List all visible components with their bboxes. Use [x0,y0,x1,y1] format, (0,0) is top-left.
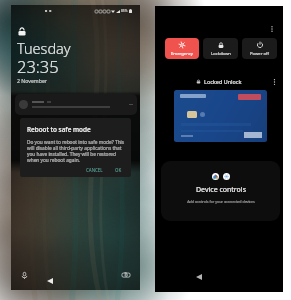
staticText: Locked Unlock [204,78,242,85]
button[interactable]: Device controls [161,161,280,221]
button[interactable]: Back [193,271,205,283]
button[interactable] [15,94,137,115]
staticText: 85% [121,9,128,13]
staticText: CANCEL [86,167,103,173]
button[interactable]: OK [113,166,124,174]
staticText: Reboot to safe mode [27,125,91,134]
button[interactable]: Voice assist [17,268,31,282]
staticText: Add controls for your connected devices [187,199,255,204]
staticText: 2 November [17,77,47,84]
button[interactable]: Emergency [165,38,199,59]
button[interactable]: Lockdown [203,38,238,59]
button[interactable] [174,90,267,142]
staticText: Device controls [196,185,247,195]
button[interactable]: Camera [119,268,133,282]
button[interactable]: CANCEL [84,166,105,174]
button[interactable]: Back [44,275,56,287]
staticText: Power off [250,51,269,57]
staticText: OK [115,167,122,173]
button[interactable]: Power off [242,38,277,59]
button[interactable]: Card options [269,77,279,86]
staticText: Tuesday [17,38,71,58]
staticText: Do you want to reboot into safe mode? Th… [27,139,126,163]
staticText: Emergency [171,51,193,57]
staticText: 23:35 [17,55,59,77]
button[interactable]: More options [267,24,277,34]
staticText: Lockdown [211,51,231,57]
